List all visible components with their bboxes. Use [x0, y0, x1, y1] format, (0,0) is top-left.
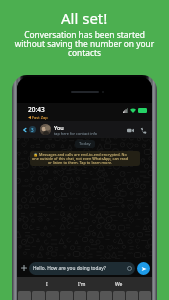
button[interactable]: We	[115, 281, 123, 288]
staticText: Conversation has been started without sa…	[0, 29, 169, 59]
button[interactable]: I'm	[78, 281, 86, 288]
button[interactable]	[113, 291, 125, 300]
staticText: 20:43	[28, 105, 45, 114]
staticText: tap here for contact info	[54, 131, 98, 136]
button[interactable]	[32, 291, 45, 300]
button[interactable]: Send	[137, 262, 150, 275]
button[interactable]: Video call	[125, 125, 135, 135]
button[interactable]	[126, 291, 138, 300]
button[interactable]: 🔒 Messages and calls are end-to-end encr…	[32, 152, 138, 165]
button[interactable]: Voice call	[138, 125, 148, 135]
staticText: 3	[31, 127, 34, 133]
staticText: Hello. How are you doing today?	[33, 265, 127, 272]
button[interactable]	[87, 291, 99, 300]
staticText: Fast Zap	[32, 115, 48, 120]
button[interactable]: Attach	[19, 263, 29, 273]
staticText: 🔒 Messages and calls are end-to-end encr…	[32, 152, 128, 165]
staticText: Today	[79, 141, 91, 147]
button[interactable]: I	[46, 281, 48, 288]
button[interactable]	[18, 291, 31, 300]
button[interactable]	[139, 291, 151, 300]
button[interactable]: Profile photo	[40, 124, 51, 135]
button[interactable]: Back	[20, 125, 29, 134]
button[interactable]	[74, 291, 86, 300]
staticText: You	[54, 124, 64, 131]
button[interactable]	[60, 291, 73, 300]
button[interactable]	[100, 291, 112, 300]
staticText: All set!	[61, 8, 108, 28]
button[interactable]	[46, 291, 59, 300]
